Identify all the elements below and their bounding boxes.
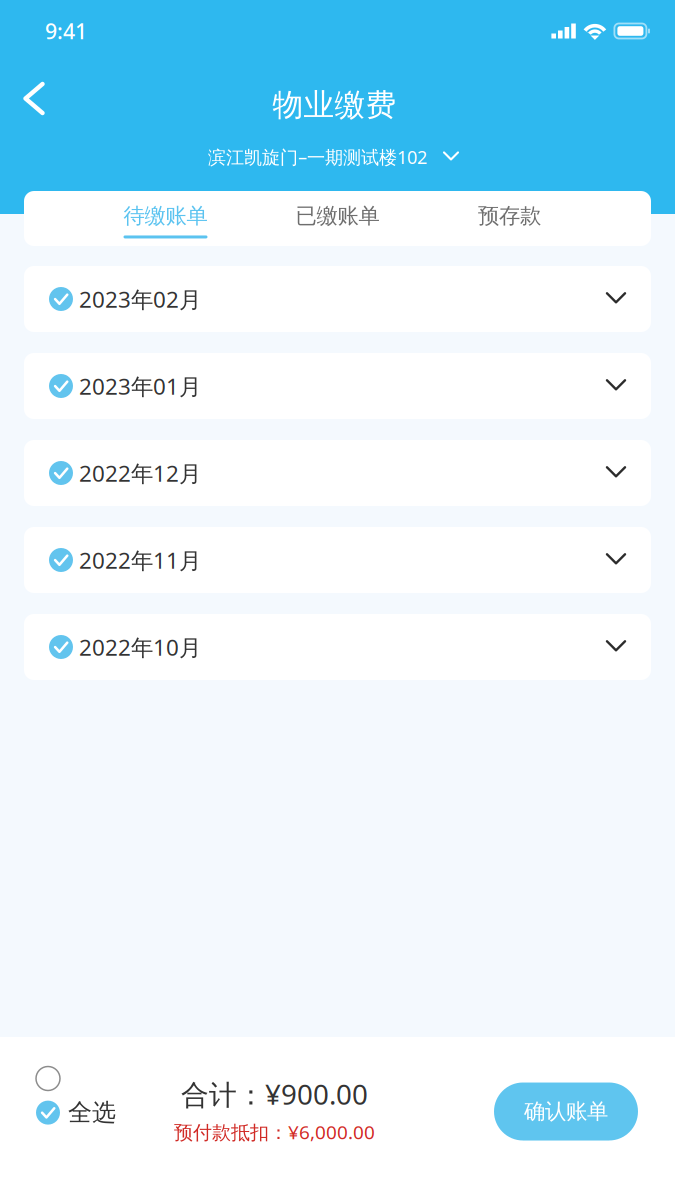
button[interactable]: Back: [11, 70, 56, 127]
staticText: 2023年02月: [79, 284, 201, 314]
staticText: 2022年12月: [79, 458, 201, 488]
button[interactable]: 2022年10月: [24, 614, 651, 680]
button[interactable]: 待缴账单: [79, 191, 251, 246]
staticText: 待缴账单: [123, 203, 207, 229]
staticText: 9:41: [45, 16, 87, 46]
button[interactable]: 已缴账单: [251, 191, 423, 246]
button[interactable]: 2023年02月: [24, 266, 651, 332]
staticText: 2022年11月: [79, 545, 201, 575]
staticText: 全选: [68, 1097, 116, 1128]
button[interactable]: 2023年01月: [24, 353, 651, 419]
button[interactable]: 滨江凯旋门–一期测试楼102: [208, 139, 458, 175]
button[interactable]: 确认账单: [494, 1082, 638, 1140]
staticText: 2022年10月: [79, 632, 201, 662]
staticText: 确认账单: [524, 1098, 608, 1125]
staticText: 2023年01月: [79, 371, 201, 401]
button[interactable]: 全选: [36, 1066, 166, 1146]
button[interactable]: 2022年11月: [24, 527, 651, 593]
staticText: 物业缴费: [272, 86, 396, 124]
staticText: 预付款抵扣：¥6,000.00: [174, 1119, 375, 1145]
staticText: 已缴账单: [295, 203, 379, 229]
staticText: 预存款: [478, 203, 541, 229]
button[interactable]: 预存款: [423, 191, 595, 246]
staticText: 合计：¥900.00: [181, 1075, 368, 1113]
button[interactable]: 2022年12月: [24, 440, 651, 506]
staticText: 滨江凯旋门–一期测试楼102: [208, 145, 427, 169]
